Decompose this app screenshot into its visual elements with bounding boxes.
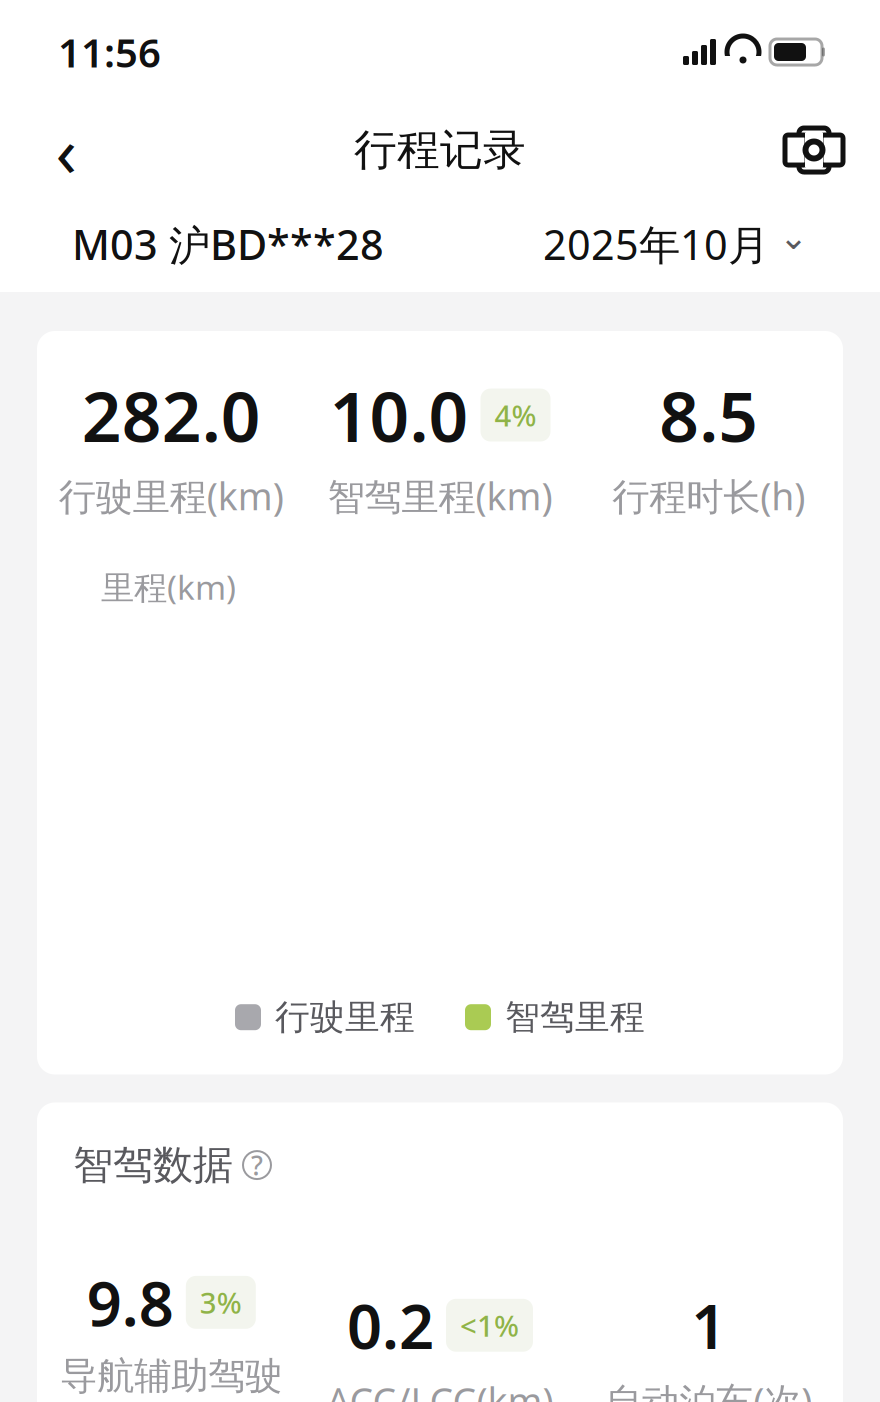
staticText: 0.2 xyxy=(347,1285,434,1366)
staticText: 行驶里程 xyxy=(275,996,415,1038)
staticText: 4% xyxy=(494,396,536,435)
staticText: ? xyxy=(251,1147,263,1183)
staticText: 10.0 xyxy=(329,369,468,461)
staticText: 9.8 xyxy=(87,1262,174,1343)
staticText: 8.5 xyxy=(659,369,758,461)
button[interactable]: 智驾数据 xyxy=(73,1140,271,1190)
staticText: 行驶里程(km) xyxy=(59,471,284,521)
staticText: 282.0 xyxy=(82,369,261,461)
staticText: 11:56 xyxy=(58,25,161,78)
staticText: 3% xyxy=(200,1283,242,1322)
button[interactable]: 设置 xyxy=(784,120,844,180)
staticText: 智驾里程 xyxy=(505,996,645,1038)
staticText: 1 xyxy=(691,1285,726,1366)
button[interactable]: 2025年10月 xyxy=(543,217,808,271)
staticText: 导航辅助驾驶(km) xyxy=(60,1353,282,1402)
staticText: 智驾里程(km) xyxy=(327,471,552,521)
staticText: 行程时长(h) xyxy=(612,471,805,521)
staticText: 自动泊车(次) xyxy=(605,1376,812,1402)
staticText: <1% xyxy=(460,1306,519,1345)
staticText: 里程(km) xyxy=(101,565,236,609)
staticText: ⌄ xyxy=(779,217,808,257)
staticText: 80 xyxy=(129,1373,163,1402)
staticText: ACC/LCC(km) xyxy=(326,1376,553,1402)
staticText: 行程记录 xyxy=(354,124,526,176)
staticText: 2025年10月 xyxy=(543,217,769,271)
staticText: ‹ xyxy=(55,104,76,196)
staticText: M03 沪BD***28 xyxy=(72,216,384,271)
button[interactable]: 返回 xyxy=(36,120,96,180)
staticText: 智驾数据 xyxy=(73,1140,233,1190)
